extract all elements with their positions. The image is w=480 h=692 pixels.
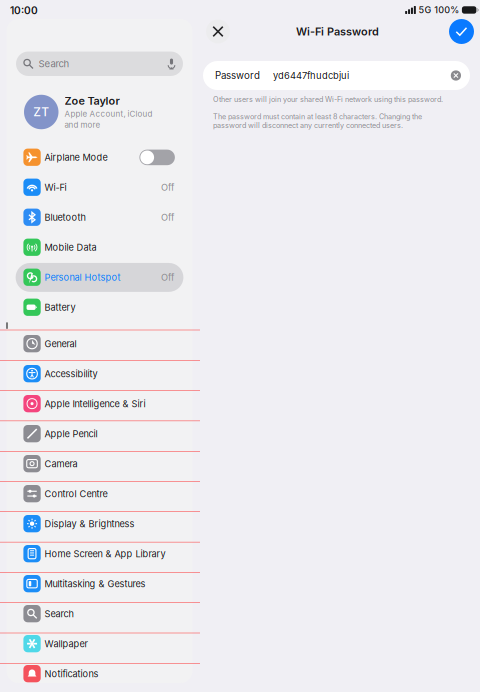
staticText: Bluetooth bbox=[45, 212, 86, 223]
staticText: ZT bbox=[33, 105, 49, 119]
button[interactable]: Wi-Fi bbox=[6, 172, 192, 202]
button[interactable]: General bbox=[6, 329, 192, 359]
button[interactable]: Apple Pencil bbox=[6, 419, 192, 449]
staticText: Control Centre bbox=[45, 488, 108, 499]
staticText: Apple Pencil bbox=[45, 428, 98, 439]
staticText: Apple Account, iCloud bbox=[64, 109, 152, 119]
staticText: Zoe Taylor bbox=[64, 94, 119, 107]
button[interactable]: ZT bbox=[24, 91, 194, 133]
button[interactable]: Save password bbox=[449, 19, 474, 44]
staticText: Wallpaper bbox=[45, 638, 88, 649]
staticText: Off bbox=[161, 272, 174, 283]
button[interactable]: Camera bbox=[6, 449, 192, 479]
button[interactable]: Control Centre bbox=[6, 479, 192, 509]
button[interactable]: Apple Intelligence & Siri bbox=[6, 389, 192, 419]
staticText: 10:00 bbox=[10, 4, 38, 17]
staticText: Wi-Fi bbox=[45, 182, 67, 193]
staticText: Home Screen & App Library bbox=[45, 548, 166, 559]
button[interactable]: Airplane Mode bbox=[6, 142, 192, 172]
staticText: Battery bbox=[45, 302, 76, 313]
staticText: General bbox=[45, 338, 77, 349]
button[interactable]: Bluetooth bbox=[6, 202, 192, 232]
staticText: Off bbox=[161, 182, 174, 193]
staticText: 5G bbox=[419, 4, 432, 15]
button[interactable]: Clear text bbox=[451, 70, 461, 81]
staticText: yd6447fhudcbjui bbox=[273, 70, 349, 81]
button[interactable]: Battery bbox=[6, 292, 192, 322]
staticText: Apple Intelligence & Siri bbox=[45, 398, 146, 409]
staticText: Mobile Data bbox=[45, 242, 97, 253]
button[interactable]: Search bbox=[6, 599, 192, 629]
staticText: Airplane Mode bbox=[45, 152, 108, 163]
staticText: Off bbox=[161, 212, 174, 223]
button[interactable]: Home Screen & App Library bbox=[6, 539, 192, 569]
button[interactable]: Search bbox=[16, 51, 183, 76]
staticText: Camera bbox=[45, 458, 78, 469]
staticText: Personal Hotspot bbox=[45, 272, 121, 283]
staticText: 100% bbox=[434, 4, 459, 15]
button[interactable]: Notifications bbox=[6, 659, 192, 689]
button[interactable]: Wallpaper bbox=[6, 629, 192, 659]
button[interactable]: Mobile Data bbox=[6, 232, 192, 262]
staticText: Notifications bbox=[45, 668, 99, 679]
button[interactable]: Multitasking & Gestures bbox=[6, 569, 192, 599]
button[interactable]: Personal Hotspot bbox=[6, 262, 192, 292]
button[interactable]: Accessibility bbox=[6, 359, 192, 389]
staticText: Multitasking & Gestures bbox=[45, 578, 146, 589]
staticText: Wi-Fi Password bbox=[296, 25, 379, 38]
staticText: and more bbox=[64, 120, 100, 130]
staticText: Password bbox=[215, 70, 260, 81]
staticText: Search bbox=[38, 58, 69, 69]
staticText: Other users will join your shared Wi-Fi … bbox=[213, 95, 443, 104]
staticText: The password must contain at least 8 cha… bbox=[213, 112, 422, 130]
button[interactable]: Close bbox=[206, 19, 230, 43]
staticText: Display & Brightness bbox=[45, 518, 135, 529]
staticText: Accessibility bbox=[45, 368, 98, 379]
button[interactable]: Display & Brightness bbox=[6, 509, 192, 539]
staticText: Search bbox=[45, 608, 74, 619]
